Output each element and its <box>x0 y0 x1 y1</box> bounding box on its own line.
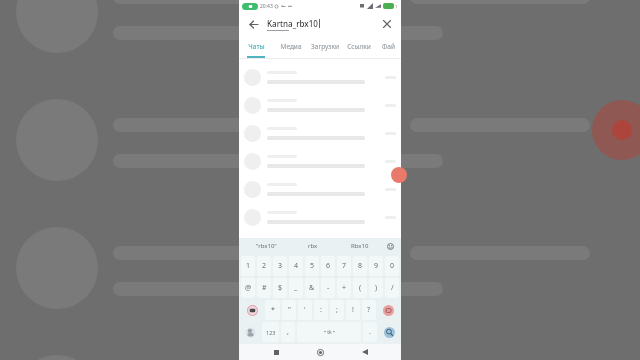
button[interactable]: Language <box>241 322 260 342</box>
staticText: rbx <box>308 242 318 250</box>
staticText: * <box>271 305 275 315</box>
button[interactable]: / <box>385 278 399 298</box>
button[interactable]: 4 <box>289 256 303 276</box>
staticText: Фай <box>382 42 395 51</box>
button[interactable]: ( <box>353 278 367 298</box>
button[interactable]: 7 <box>337 256 351 276</box>
staticText: 9 <box>374 261 379 271</box>
staticText: 8 <box>358 261 363 271</box>
staticText: Kartna_rbx10 <box>267 18 318 29</box>
staticText: / <box>391 283 394 293</box>
staticText: Rbx10 <box>351 242 369 250</box>
button[interactable]: Clear <box>379 16 395 32</box>
button[interactable]: ! <box>346 300 360 320</box>
button[interactable]: Загрузки <box>308 36 342 56</box>
staticText: - <box>327 283 330 293</box>
button[interactable]: Чаты <box>239 36 274 56</box>
button[interactable]: ' <box>298 300 312 320</box>
staticText: Загрузки <box>311 42 339 51</box>
staticText: # <box>262 283 267 293</box>
button[interactable]: . <box>363 322 377 342</box>
staticText: @ <box>245 283 252 293</box>
staticText: ! <box>352 305 354 315</box>
button[interactable]: 2 <box>257 256 271 276</box>
staticText: 1 <box>246 261 251 271</box>
staticText: 1 <box>395 4 398 9</box>
staticText: Чаты <box>248 42 265 51</box>
button[interactable]: ) <box>369 278 383 298</box>
staticText: Ссылки <box>347 42 371 51</box>
staticText: & <box>309 283 315 293</box>
button[interactable]: Фай <box>376 36 401 56</box>
button[interactable]: , <box>281 322 295 342</box>
staticText: 123 <box>266 329 276 336</box>
button[interactable]: ; <box>330 300 344 320</box>
staticText: ) <box>375 283 378 293</box>
staticText: 0 <box>390 261 395 271</box>
staticText: . <box>369 327 371 337</box>
button[interactable]: Symbols <box>241 300 263 320</box>
staticText: 6 <box>326 261 331 271</box>
button[interactable]: : <box>314 300 328 320</box>
staticText: : <box>320 305 322 315</box>
staticText: ? <box>367 305 371 315</box>
button[interactable]: Home <box>312 344 328 360</box>
staticText: 4 <box>294 261 299 271</box>
button[interactable]: Ссылки <box>342 36 376 56</box>
staticText: $ <box>278 283 283 293</box>
button[interactable]: 8 <box>353 256 367 276</box>
button[interactable]: • tk • <box>297 322 361 342</box>
button[interactable]: New chat <box>391 167 407 183</box>
button[interactable]: Медиа <box>274 36 308 56</box>
button[interactable]: * <box>265 300 280 320</box>
button[interactable]: $ <box>273 278 287 298</box>
button[interactable]: Back <box>357 344 373 360</box>
staticText: 2 <box>262 261 267 271</box>
button[interactable]: 6 <box>321 256 335 276</box>
staticText: + <box>342 283 347 293</box>
staticText: 7 <box>342 261 347 271</box>
button[interactable]: Recents <box>268 344 284 360</box>
button[interactable]: _ <box>289 278 303 298</box>
staticText: " <box>288 305 291 315</box>
button[interactable]: # <box>257 278 271 298</box>
button[interactable]: " <box>282 300 296 320</box>
staticText: ; <box>336 305 338 315</box>
button[interactable]: - <box>321 278 335 298</box>
button[interactable]: Emoji <box>383 238 397 254</box>
staticText: , <box>287 327 289 337</box>
staticText: ' <box>304 305 306 315</box>
button[interactable]: Rbx10 <box>336 238 383 254</box>
staticText: 5 <box>310 261 315 271</box>
button[interactable]: Search <box>379 322 399 342</box>
button[interactable]: Back <box>245 16 261 32</box>
button[interactable]: 1 <box>241 256 255 276</box>
button[interactable]: Backspace <box>378 300 399 320</box>
button[interactable]: rbx <box>289 238 336 254</box>
button[interactable]: 123 <box>262 322 279 342</box>
staticText: • tk • <box>324 329 335 336</box>
button[interactable]: & <box>305 278 319 298</box>
button[interactable]: 0 <box>385 256 399 276</box>
button[interactable]: 3 <box>273 256 287 276</box>
button[interactable]: 5 <box>305 256 319 276</box>
staticText: 3 <box>278 261 283 271</box>
button[interactable]: 9 <box>369 256 383 276</box>
button[interactable]: + <box>337 278 351 298</box>
staticText: ( <box>359 283 362 293</box>
staticText: "rbx10" <box>256 242 277 250</box>
staticText: 20:43 <box>260 3 273 10</box>
button[interactable]: "rbx10" <box>243 238 289 254</box>
button[interactable]: ? <box>362 300 376 320</box>
button[interactable]: @ <box>241 278 255 298</box>
staticText: Медиа <box>280 42 302 51</box>
staticText: _ <box>294 283 298 293</box>
